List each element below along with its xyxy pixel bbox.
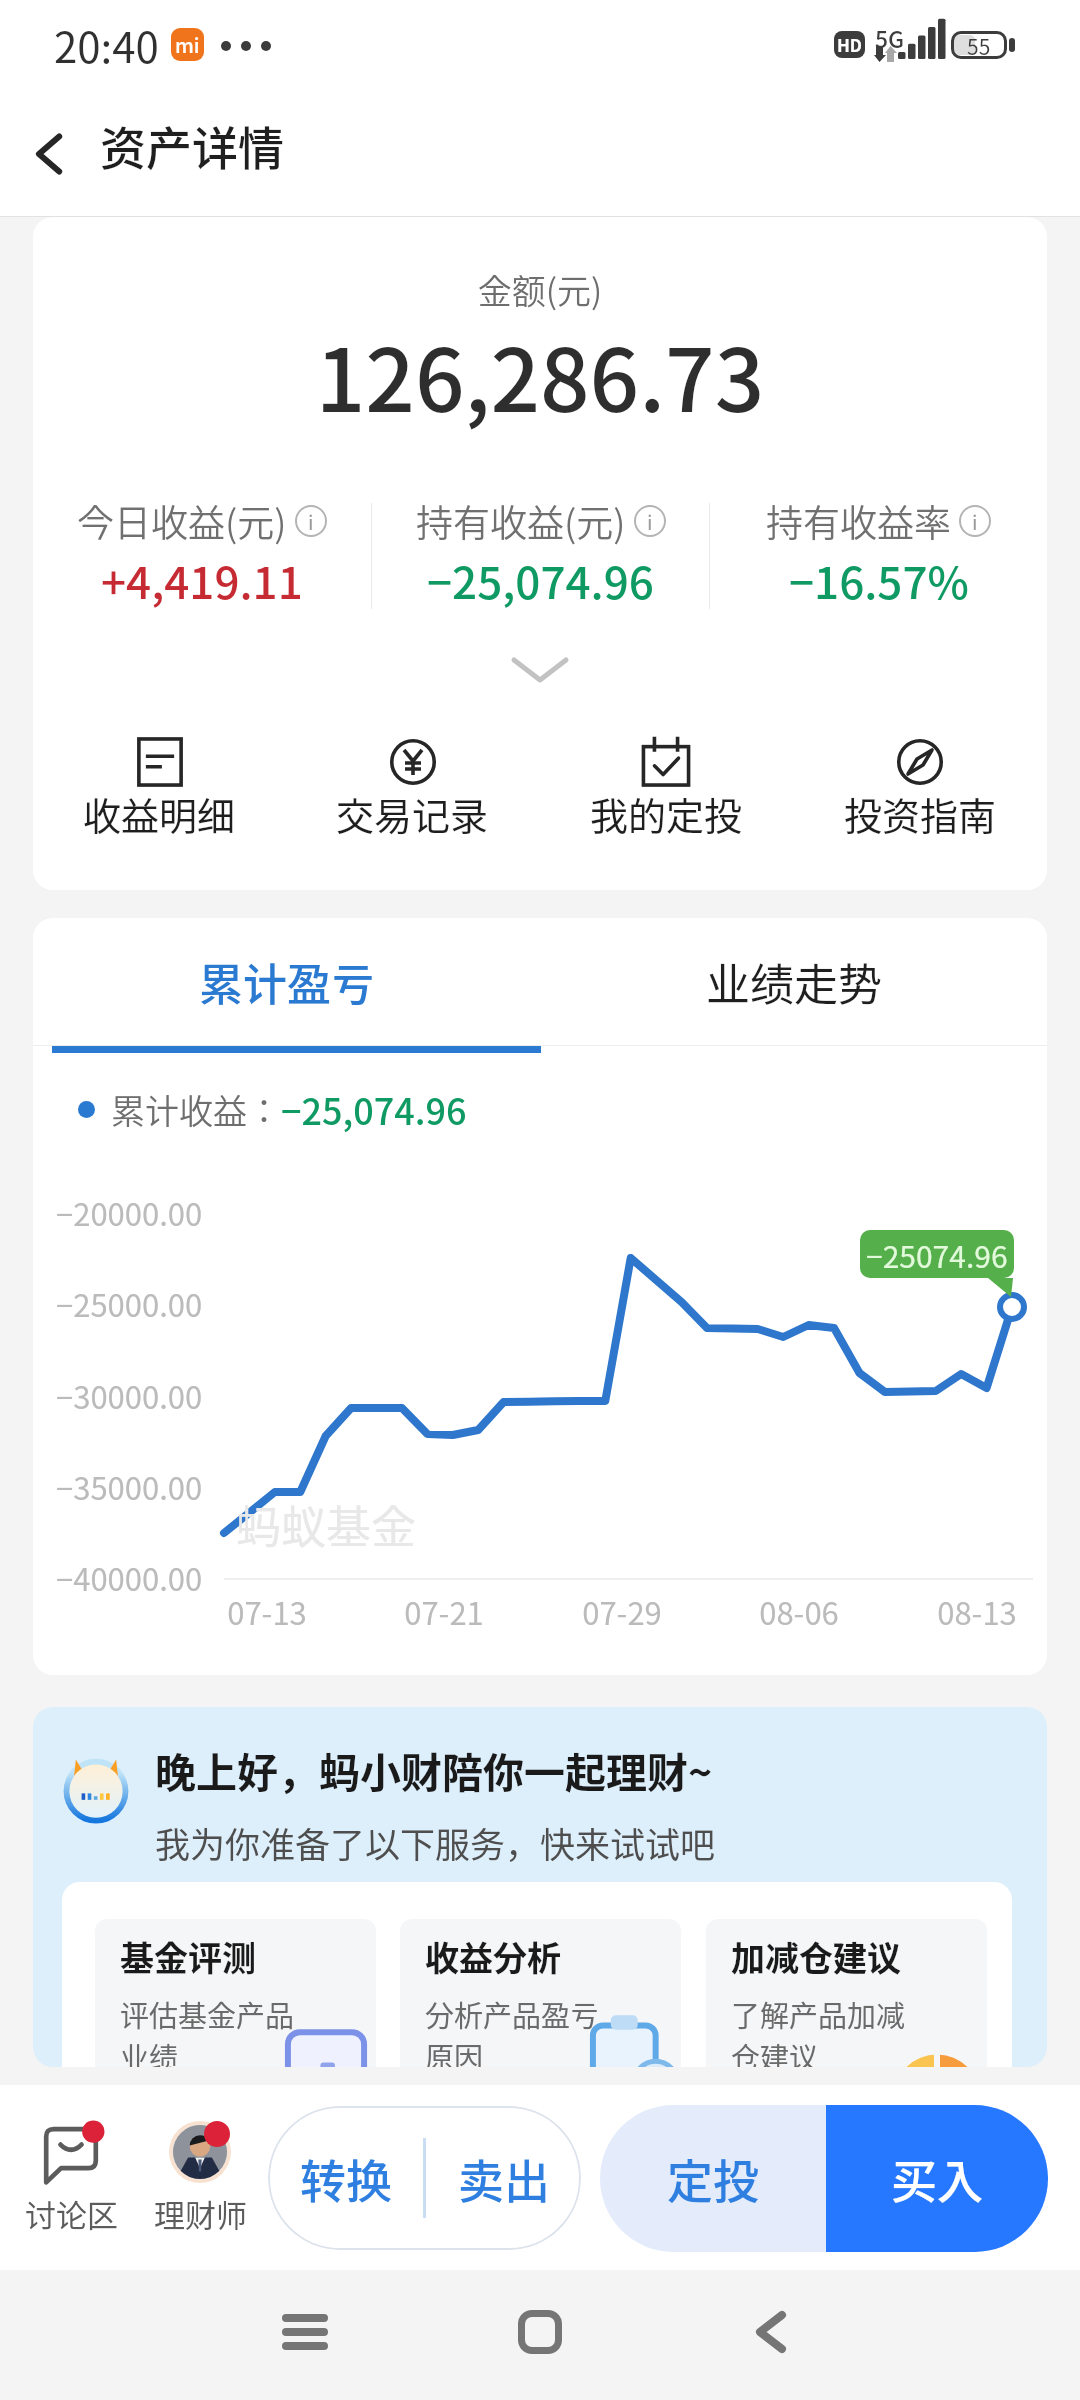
staticText: i (308, 507, 314, 536)
staticText: 基金评测 (120, 1932, 256, 1981)
staticText: −40000.00 (56, 1555, 203, 1600)
staticText: 讨论区 (25, 2191, 118, 2236)
staticText: 我为你准备了以下服务，快来试试吧 (155, 1817, 716, 1868)
staticText: 07-21 (384, 1589, 504, 1634)
staticText: 5G (875, 21, 905, 54)
staticText: −25074.96 (866, 1233, 1008, 1276)
staticText: HD (837, 32, 863, 57)
button[interactable]: 收益分析 (400, 1919, 681, 2067)
button[interactable]: 卖出 (426, 2106, 581, 2250)
staticText: mi (175, 30, 200, 59)
staticText: 持有收益(元) (416, 494, 626, 548)
button[interactable]: Back (711, 2272, 831, 2392)
button[interactable]: 加减仓建议 (706, 1919, 987, 2067)
staticText: 晚上好，蚂小财陪你一起理财~ (155, 1740, 713, 1799)
staticText: 转换 (300, 2145, 392, 2212)
staticText: 08-06 (739, 1589, 859, 1634)
button[interactable]: 我的定投 (539, 738, 793, 841)
button[interactable]: Home (480, 2272, 600, 2392)
staticText: 07-29 (562, 1589, 682, 1634)
staticText: −25,074.96 (281, 1083, 467, 1135)
staticText: −16.57% (789, 548, 969, 612)
staticText: 收益明细 (83, 786, 236, 841)
staticText: 卖出 (458, 2145, 550, 2212)
staticText: 20:40 (54, 14, 159, 75)
button[interactable]: 转换 (268, 2106, 423, 2250)
staticText: 累计收益： (111, 1085, 281, 1134)
staticText: 累计盈亏 (199, 950, 375, 1014)
staticText: −25,074.96 (427, 548, 654, 612)
staticText: 了解产品加减 仓建议 (731, 1993, 906, 2067)
staticText: 评估基金产品 业绩 (120, 1993, 295, 2067)
staticText: +4,419.11 (101, 548, 303, 612)
button[interactable]: Back (0, 104, 100, 204)
button[interactable]: 投资指南 (793, 738, 1047, 841)
staticText: i (972, 507, 978, 536)
button[interactable]: 买入 (826, 2105, 1048, 2252)
staticText: 理财师 (154, 2191, 247, 2236)
button[interactable]: 业绩走势 (540, 918, 1047, 1046)
staticText: 08-13 (917, 1589, 1037, 1634)
staticText: 今日收益(元) (77, 494, 287, 548)
staticText: −30000.00 (56, 1373, 203, 1418)
staticText: −25000.00 (56, 1281, 203, 1326)
button[interactable]: 定投 (600, 2105, 826, 2252)
staticText: 交易记录 (336, 786, 489, 841)
staticText: 收益分析 (425, 1932, 561, 1981)
staticText: 业绩走势 (706, 950, 882, 1014)
button[interactable]: 讨论区 (15, 2121, 127, 2236)
staticText: 蚂蚁基金 (236, 1492, 417, 1557)
button[interactable]: 理财师 (144, 2121, 256, 2236)
staticText: −20000.00 (56, 1190, 203, 1235)
staticText: 投资指南 (844, 786, 997, 841)
staticText: −35000.00 (56, 1464, 203, 1509)
button[interactable]: Recents (245, 2272, 365, 2392)
staticText: 资产详情 (100, 112, 284, 179)
staticText: 55 (967, 31, 991, 59)
staticText: 126,286.73 (33, 311, 1047, 437)
button[interactable]: 交易记录 (286, 738, 539, 841)
staticText: 我的定投 (590, 786, 743, 841)
staticText: 加减仓建议 (731, 1932, 901, 1981)
staticText: 买入 (891, 2145, 983, 2212)
staticText: 金额(元) (33, 265, 1047, 314)
button[interactable]: 基金评测 (95, 1919, 376, 2067)
staticText: 07-13 (207, 1589, 327, 1634)
staticText: 分析产品盈亏 原因 (425, 1993, 600, 2067)
staticText: i (647, 507, 653, 536)
button[interactable]: 累计盈亏 (33, 918, 540, 1046)
staticText: 定投 (667, 2145, 759, 2212)
button[interactable]: 收益明细 (33, 738, 286, 841)
staticText: 持有收益率 (766, 494, 951, 548)
